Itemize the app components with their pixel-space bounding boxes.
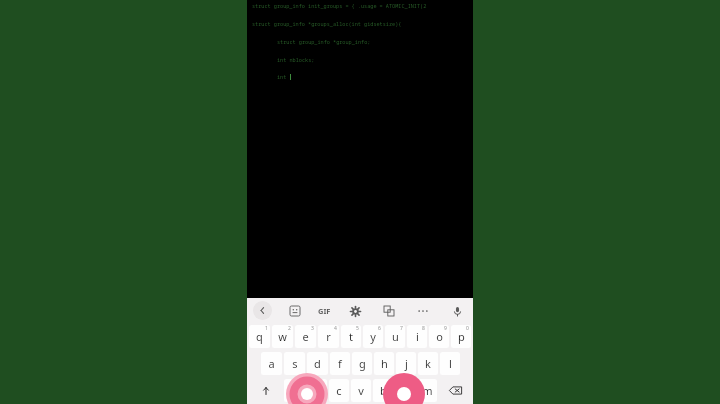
staticText: 1: [265, 325, 268, 332]
staticText: struct group_info *groups_alloc(int gids…: [252, 20, 402, 27]
staticText: 0: [466, 325, 469, 332]
button[interactable]: q: [249, 325, 270, 348]
staticText: 5: [356, 325, 359, 332]
staticText: l: [449, 356, 452, 371]
staticText: k: [425, 356, 431, 371]
button[interactable]: t: [341, 325, 361, 348]
button[interactable]: l: [440, 352, 460, 375]
button[interactable]: f: [330, 352, 350, 375]
staticText: 3: [311, 325, 314, 332]
staticText: 7: [400, 325, 403, 332]
button[interactable]: p: [451, 325, 471, 348]
button[interactable]: y: [363, 325, 383, 348]
button[interactable]: w: [272, 325, 293, 348]
button[interactable]: Voice input: [447, 301, 467, 321]
staticText: o: [436, 329, 443, 344]
staticText: struct group_info *group_info;: [277, 38, 371, 45]
button[interactable]: z: [284, 379, 305, 402]
staticText: w: [278, 329, 287, 344]
button[interactable]: More options: [413, 301, 433, 321]
staticText: 9: [444, 325, 447, 332]
button[interactable]: GIF: [318, 301, 331, 321]
staticText: 6: [378, 325, 381, 332]
button[interactable]: i: [407, 325, 427, 348]
button[interactable]: r: [318, 325, 339, 348]
staticText: i: [416, 329, 419, 344]
button[interactable]: Translate: [379, 301, 399, 321]
button[interactable]: s: [284, 352, 305, 375]
staticText: p: [458, 329, 465, 344]
button[interactable]: e: [295, 325, 316, 348]
button[interactable]: v: [351, 379, 371, 402]
staticText: z: [292, 383, 298, 398]
button[interactable]: h: [374, 352, 394, 375]
button[interactable]: k: [418, 352, 438, 375]
staticText: struct group_info init_groups = { .usage…: [252, 2, 427, 9]
staticText: int: [277, 73, 290, 80]
staticText: f: [338, 356, 342, 371]
staticText: 8: [422, 325, 425, 332]
staticText: x: [314, 383, 320, 398]
button[interactable]: Settings: [345, 301, 365, 321]
staticText: y: [370, 329, 376, 344]
button[interactable]: b: [373, 379, 393, 402]
staticText: b: [380, 383, 387, 398]
staticText: g: [359, 356, 366, 371]
button[interactable]: g: [352, 352, 372, 375]
staticText: GIF: [318, 306, 331, 316]
button[interactable]: j: [396, 352, 416, 375]
staticText: t: [349, 329, 353, 344]
staticText: c: [336, 383, 342, 398]
button[interactable]: o: [429, 325, 449, 348]
button[interactable]: n: [395, 379, 415, 402]
button[interactable]: d: [307, 352, 328, 375]
staticText: m: [422, 383, 433, 398]
staticText: u: [392, 329, 399, 344]
staticText: v: [358, 383, 364, 398]
button[interactable]: Back: [253, 301, 272, 320]
button[interactable]: m: [417, 379, 437, 402]
button[interactable]: c: [329, 379, 349, 402]
staticText: a: [268, 356, 275, 371]
staticText: q: [256, 329, 263, 344]
staticText: j: [405, 356, 408, 371]
button[interactable]: Shift: [249, 379, 282, 402]
staticText: 2: [288, 325, 291, 332]
button[interactable]: Stickers: [285, 301, 305, 321]
staticText: 4: [334, 325, 337, 332]
button[interactable]: a: [261, 352, 282, 375]
staticText: r: [326, 329, 331, 344]
staticText: d: [314, 356, 321, 371]
button[interactable]: u: [385, 325, 405, 348]
staticText: int nblocks;: [277, 56, 315, 63]
button[interactable]: Backspace: [439, 379, 471, 402]
button[interactable]: x: [307, 379, 327, 402]
staticText: n: [402, 383, 409, 398]
staticText: h: [381, 356, 388, 371]
staticText: e: [302, 329, 309, 344]
staticText: s: [292, 356, 298, 371]
